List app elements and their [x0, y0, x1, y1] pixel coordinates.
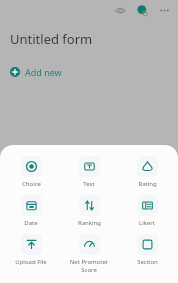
button[interactable]: More options: [156, 2, 173, 19]
button[interactable]: Net Promoter Score: [62, 234, 116, 274]
staticText: Upload File: [15, 258, 47, 266]
button[interactable]: Date: [4, 195, 58, 227]
staticText: Text: [83, 180, 95, 188]
button[interactable]: Preview: [112, 2, 129, 19]
staticText: Choice: [22, 180, 41, 188]
staticText: Add new: [25, 66, 62, 78]
staticText: Section: [137, 258, 158, 266]
button[interactable]: Add new: [10, 66, 62, 78]
staticText: Ranking: [78, 219, 101, 227]
staticText: Date: [24, 219, 38, 227]
staticText: Net Promoter Score: [62, 258, 116, 274]
button[interactable]: Ranking: [62, 195, 116, 227]
staticText: Likert: [139, 219, 155, 227]
staticText: Untitled form: [10, 30, 93, 48]
staticText: Rating: [138, 180, 157, 188]
button[interactable]: Likert: [120, 195, 174, 227]
button[interactable]: Upload File: [4, 234, 58, 266]
button[interactable]: Rating: [120, 156, 174, 188]
button[interactable]: Section: [120, 234, 174, 266]
button[interactable]: Choice: [4, 156, 58, 188]
button[interactable]: Theme: [134, 2, 151, 19]
button[interactable]: Text: [62, 156, 116, 188]
